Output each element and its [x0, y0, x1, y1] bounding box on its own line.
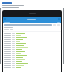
button[interactable] — [3, 32, 61, 34]
button[interactable] — [3, 48, 61, 50]
button[interactable] — [3, 64, 61, 66]
button[interactable] — [3, 60, 61, 62]
button[interactable] — [3, 44, 61, 46]
button[interactable] — [3, 54, 61, 56]
button[interactable] — [3, 36, 61, 38]
button[interactable] — [3, 50, 61, 52]
button[interactable] — [3, 66, 61, 68]
button[interactable] — [3, 56, 61, 58]
button[interactable] — [3, 62, 61, 64]
button[interactable] — [3, 58, 61, 60]
button[interactable] — [3, 40, 61, 42]
button[interactable] — [3, 42, 61, 44]
button[interactable] — [3, 38, 61, 40]
button[interactable] — [3, 52, 61, 54]
button[interactable] — [3, 46, 61, 48]
button[interactable] — [3, 34, 61, 36]
